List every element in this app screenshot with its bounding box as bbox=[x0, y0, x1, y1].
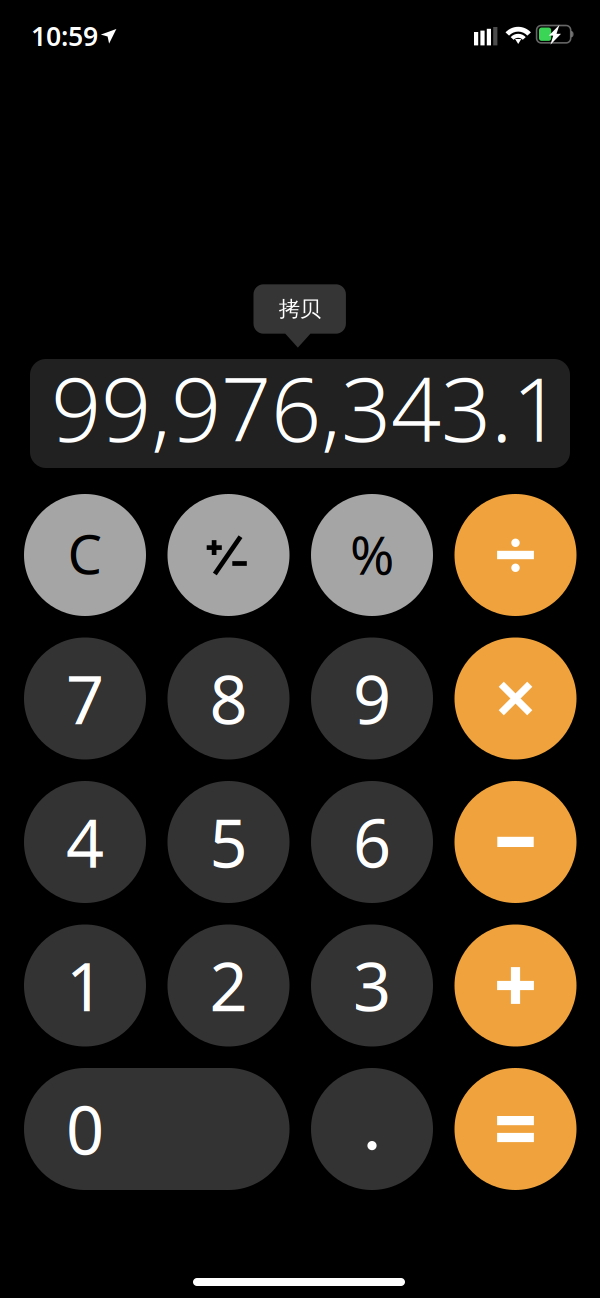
staticText: 5 bbox=[209, 798, 247, 886]
button[interactable]: 1 bbox=[24, 924, 146, 1046]
staticText: 6 bbox=[353, 798, 391, 886]
staticText: 2 bbox=[209, 941, 247, 1030]
button[interactable]: Minus bbox=[454, 781, 576, 903]
button[interactable]: 7 bbox=[24, 637, 146, 759]
button[interactable]: 拷贝 bbox=[253, 284, 346, 348]
button[interactable]: Plus bbox=[454, 924, 576, 1046]
staticText: 拷贝 bbox=[279, 296, 321, 322]
button[interactable]: % bbox=[311, 494, 433, 616]
button[interactable]: 0 bbox=[24, 1068, 289, 1190]
staticText: 7 bbox=[66, 654, 104, 743]
button[interactable]: Multiply bbox=[454, 637, 576, 759]
button[interactable]: 9 bbox=[311, 637, 433, 759]
button[interactable]: Divide bbox=[454, 494, 576, 616]
button[interactable]: 99,976,343.1 bbox=[30, 359, 570, 468]
button[interactable]: 5 bbox=[167, 781, 289, 903]
staticText: 8 bbox=[209, 654, 247, 743]
staticText: 0 bbox=[66, 1085, 104, 1173]
staticText: 4 bbox=[66, 798, 104, 886]
staticText: 3 bbox=[353, 941, 391, 1030]
button[interactable]: Equals bbox=[454, 1068, 576, 1190]
staticText: 1 bbox=[66, 941, 104, 1030]
staticText: 9 bbox=[353, 654, 391, 743]
button[interactable]: C bbox=[24, 494, 146, 616]
staticText: 10:59 bbox=[31, 18, 98, 53]
staticText: C bbox=[67, 517, 102, 589]
button[interactable]: 4 bbox=[24, 781, 146, 903]
staticText: % bbox=[350, 519, 394, 589]
staticText: 99,976,343.1 bbox=[51, 349, 562, 466]
button[interactable]: Plus Minus bbox=[167, 494, 289, 616]
button[interactable]: 2 bbox=[167, 924, 289, 1046]
button[interactable]: 8 bbox=[167, 637, 289, 759]
button[interactable]: 3 bbox=[311, 924, 433, 1046]
button[interactable]: 6 bbox=[311, 781, 433, 903]
button[interactable]: Decimal point bbox=[311, 1068, 433, 1190]
